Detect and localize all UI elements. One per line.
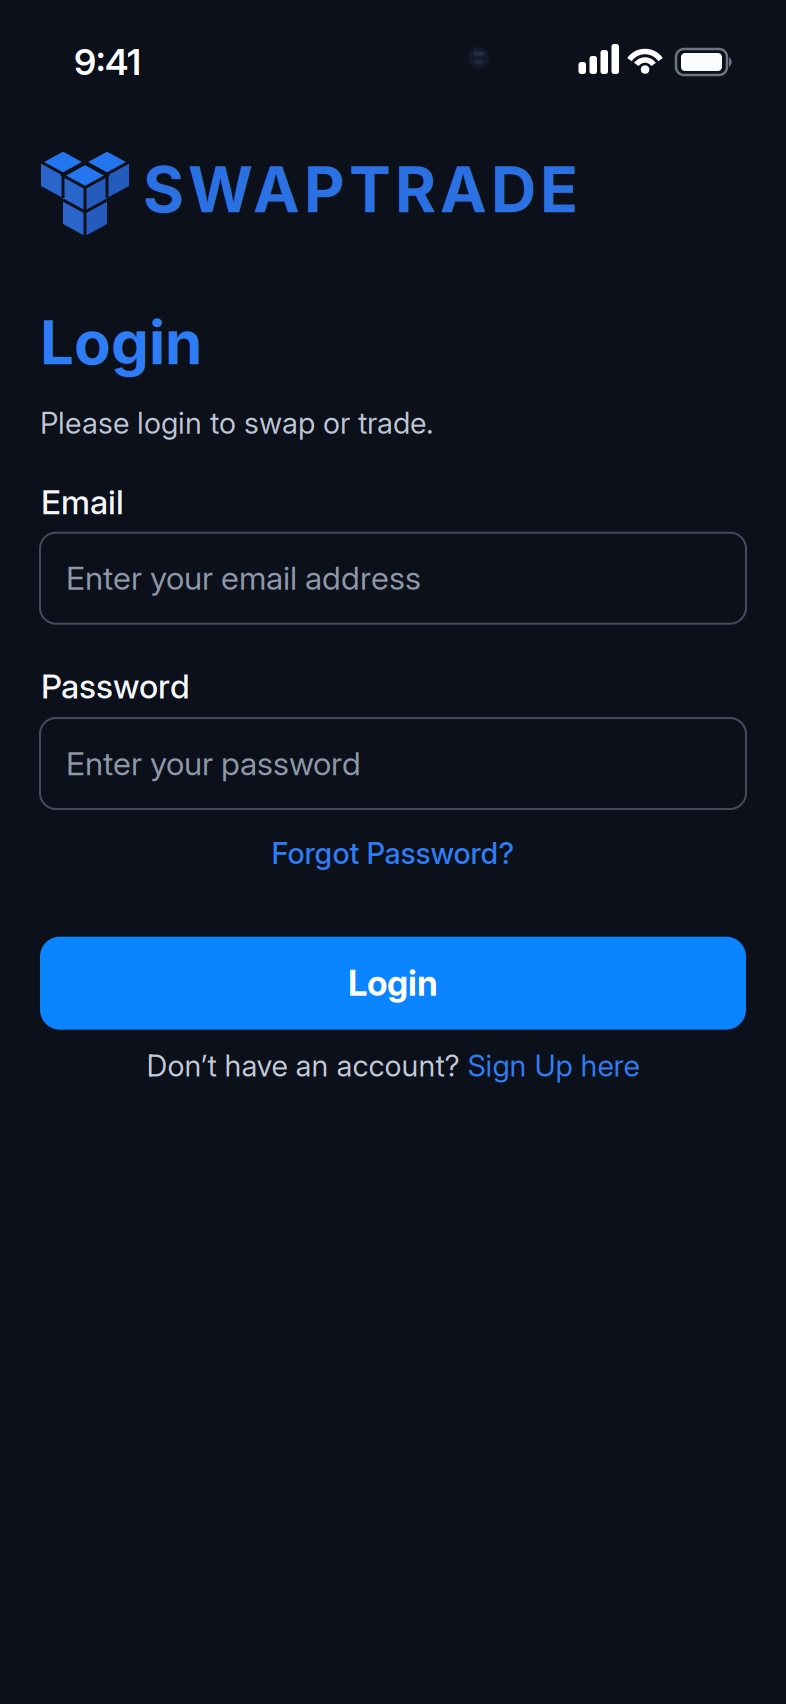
- button[interactable]: Sign Up here: [467, 1049, 639, 1083]
- staticText: 9:41: [74, 41, 141, 83]
- button[interactable]: Forgot Password?: [271, 836, 514, 871]
- staticText: Login: [40, 307, 202, 378]
- staticText: Please login to swap or trade.: [40, 406, 434, 440]
- staticText: Forgot Password?: [271, 836, 514, 871]
- staticText: Password: [41, 667, 190, 706]
- staticText: Enter your password: [66, 745, 361, 782]
- button[interactable]: Login: [40, 937, 746, 1030]
- staticText: Don’t have an account?: [146, 1049, 467, 1083]
- staticText: SWAPTRADE: [143, 152, 578, 226]
- staticText: Sign Up here: [467, 1049, 639, 1083]
- staticText: Enter your email address: [66, 559, 421, 597]
- staticText: Email: [41, 482, 124, 522]
- staticText: Login: [348, 963, 438, 1004]
